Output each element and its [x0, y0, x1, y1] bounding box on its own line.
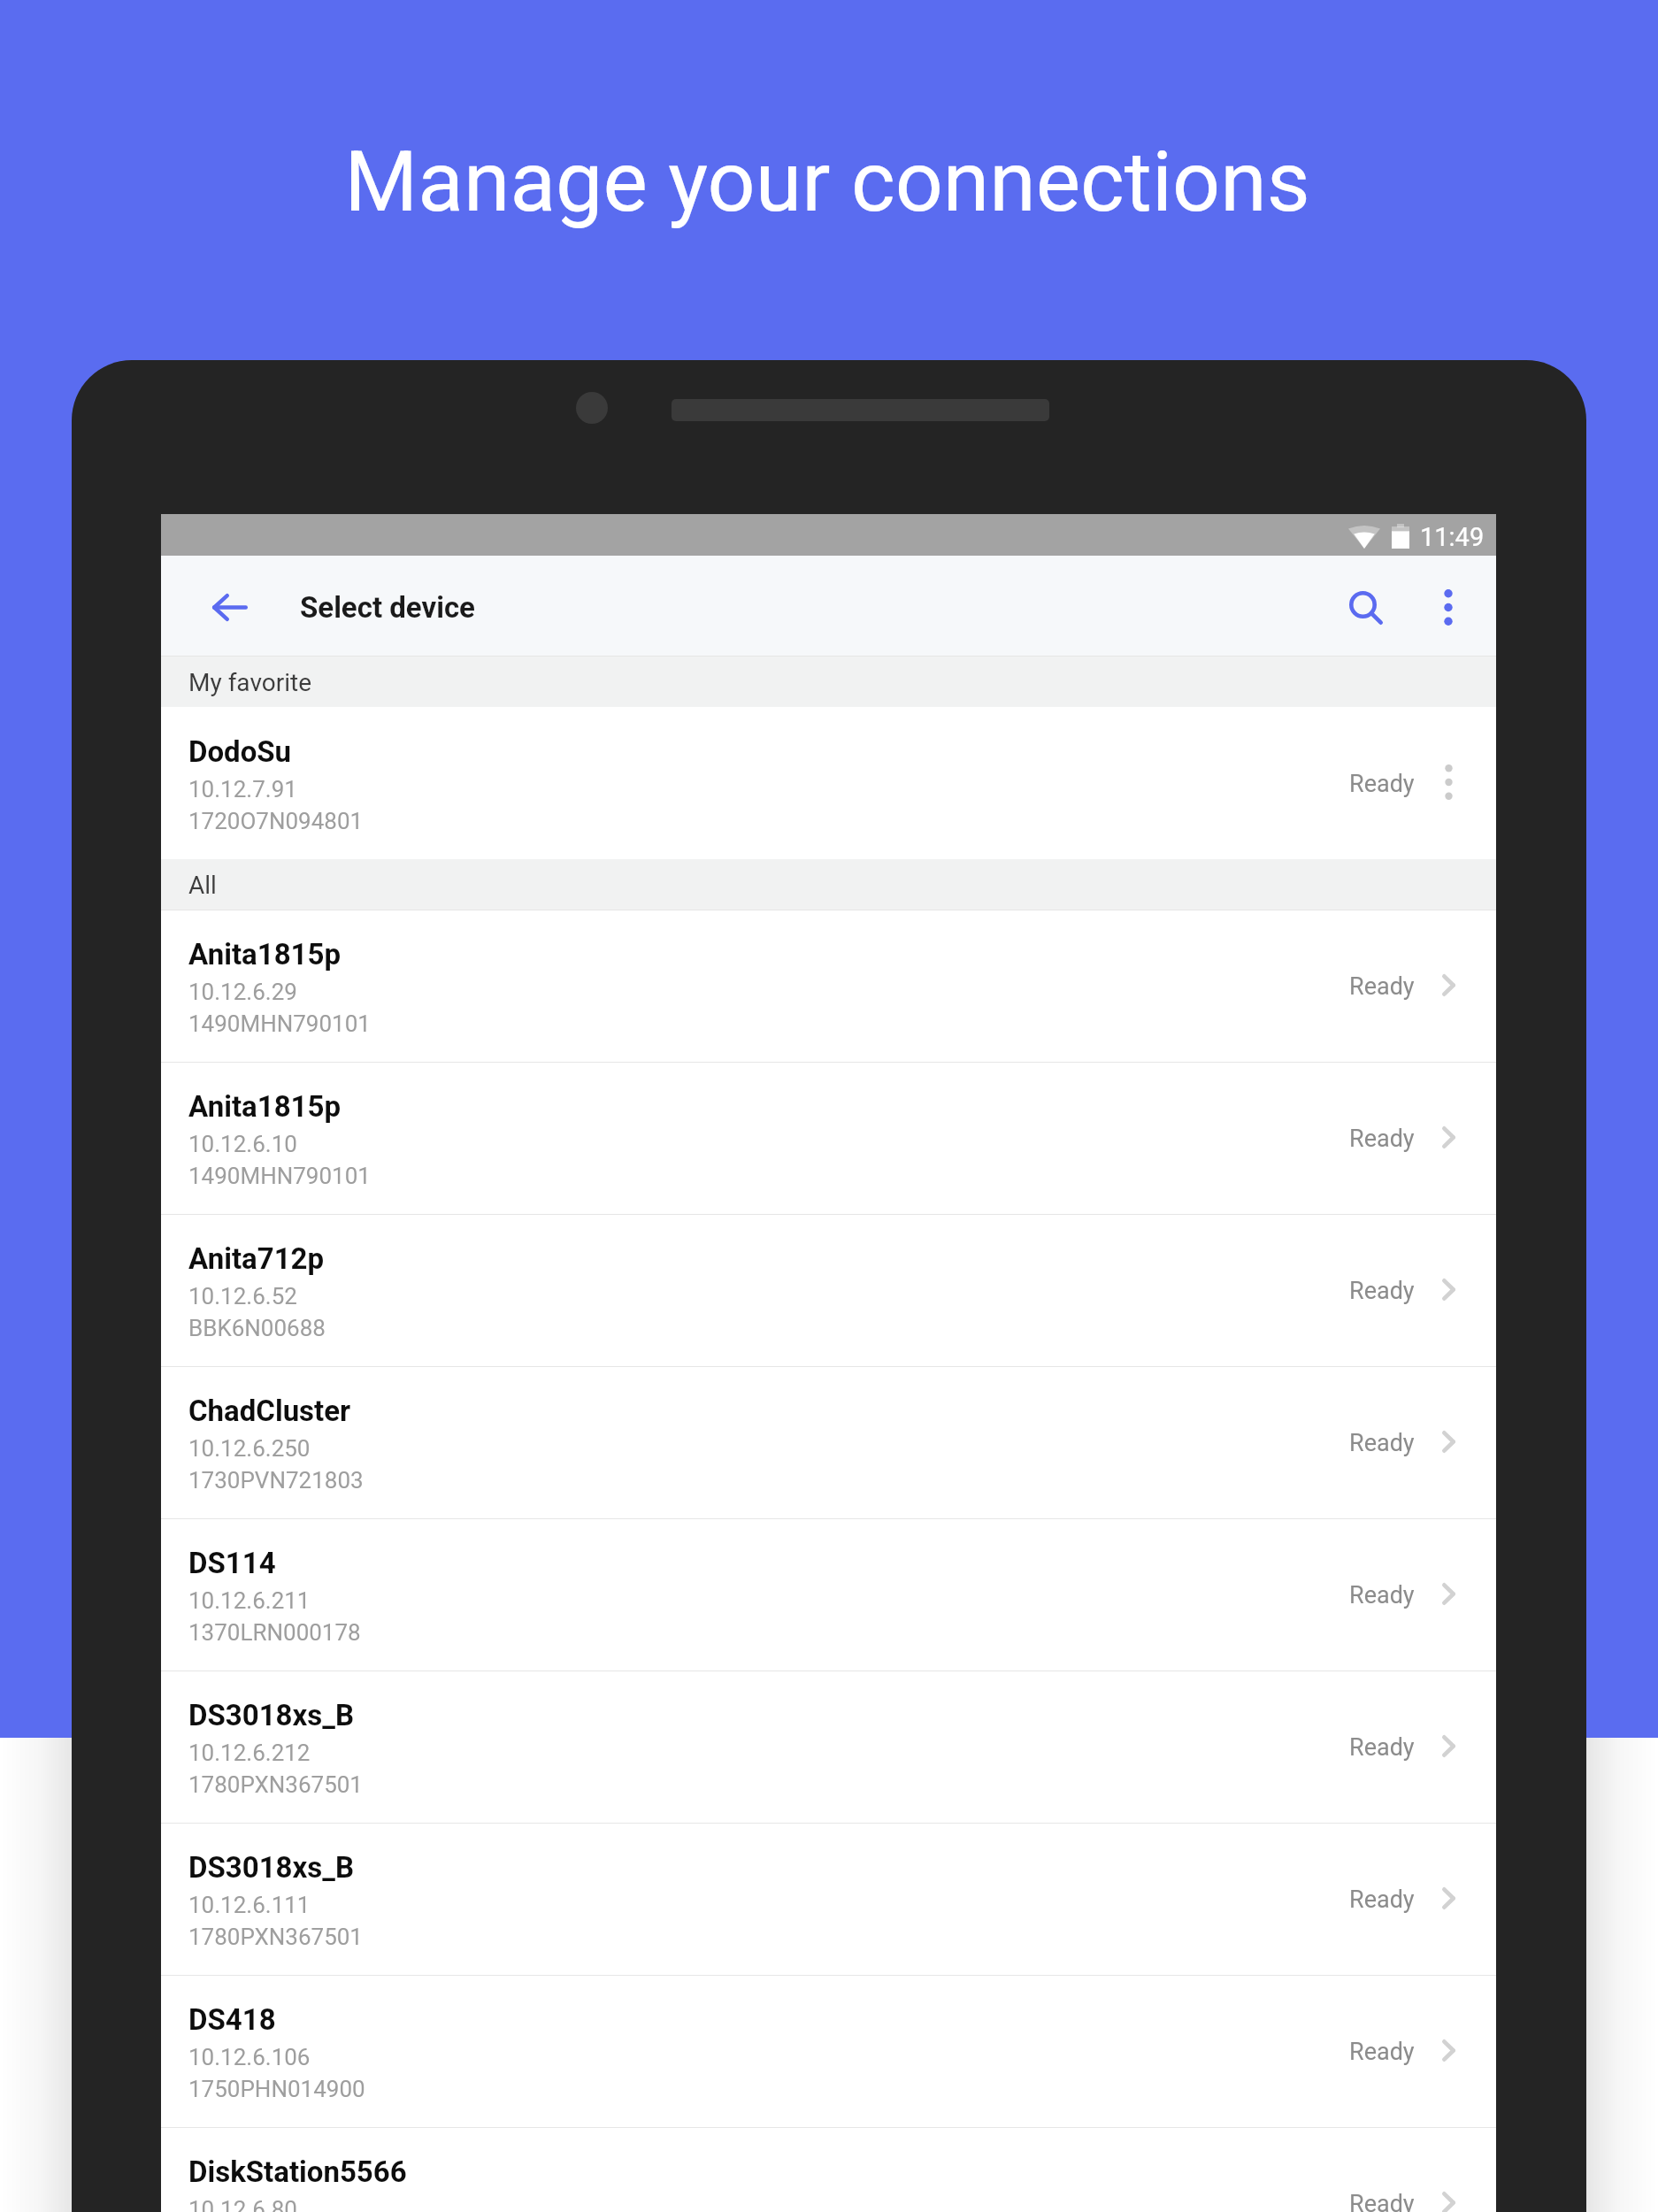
button[interactable]: DS418 — [161, 1975, 1496, 2127]
button[interactable]: DS3018xs_B — [161, 1671, 1496, 1823]
staticText: DodoSu — [188, 734, 292, 769]
button[interactable]: ChadCluster — [161, 1366, 1496, 1518]
button[interactable]: DS114 — [161, 1518, 1496, 1671]
button[interactable]: Anita1815p — [161, 910, 1496, 1062]
staticText: DS114 — [188, 1546, 276, 1580]
staticText: 10.12.6.52 — [188, 1283, 297, 1310]
staticText: Ready — [1349, 1733, 1415, 1762]
staticText: DS418 — [188, 2002, 276, 2037]
other: Open device — [1406, 1094, 1491, 1179]
staticText: 1490MHN790101 — [188, 1010, 371, 1037]
staticText: Manage your connections — [344, 133, 1310, 231]
button[interactable]: Anita1815p — [161, 1062, 1496, 1214]
button[interactable]: Anita712p — [161, 1214, 1496, 1366]
staticText: Ready — [1349, 1581, 1415, 1609]
button[interactable]: DodoSu — [161, 707, 1496, 859]
staticText: Ready — [1349, 2038, 1415, 2066]
staticText: 10.12.6.10 — [188, 1131, 297, 1157]
other: Open device — [1406, 1247, 1491, 1332]
button[interactable]: More options — [1406, 565, 1491, 649]
other: Open device — [1406, 2008, 1491, 2093]
staticText: ChadCluster — [188, 1394, 351, 1428]
other: Open device — [1406, 1703, 1491, 1788]
staticText: 1370LRN000178 — [188, 1619, 361, 1646]
button[interactable]: Device options — [1406, 740, 1491, 825]
staticText: Ready — [1349, 1886, 1415, 1914]
staticText: 10.12.6.111 — [188, 1892, 311, 1918]
staticText: BBK6N00688 — [188, 1315, 326, 1341]
staticText: 10.12.6.29 — [188, 979, 297, 1005]
staticText: 1490MHN790101 — [188, 1163, 371, 1189]
staticText: All — [188, 871, 217, 900]
staticText: 1750PHN014900 — [188, 2076, 365, 2102]
staticText: Ready — [1349, 770, 1415, 798]
staticText: DiskStation5566 — [188, 2154, 407, 2189]
staticText: 11:49 — [1420, 522, 1485, 552]
staticText: 10.12.6.80 — [188, 2196, 297, 2212]
button[interactable]: DS3018xs_B — [161, 1823, 1496, 1975]
other: Open device — [1406, 1551, 1491, 1636]
staticText: Select device — [300, 590, 475, 625]
staticText: 1720O7N094801 — [188, 808, 364, 834]
staticText: 10.12.6.106 — [188, 2044, 311, 2070]
other: Open device — [1406, 942, 1491, 1027]
staticText: Ready — [1349, 1125, 1415, 1153]
staticText: 10.12.7.91 — [188, 776, 297, 803]
other: Open device — [1406, 2160, 1491, 2212]
staticText: Ready — [1349, 972, 1415, 1001]
button[interactable]: DiskStation5566 — [161, 2127, 1496, 2212]
staticText: 1780PXN367501 — [188, 1924, 363, 1950]
staticText: 10.12.6.250 — [188, 1435, 311, 1462]
staticText: Ready — [1349, 1277, 1415, 1305]
staticText: Anita1815p — [188, 1089, 342, 1124]
staticText: Ready — [1349, 2190, 1415, 2212]
button[interactable]: Search — [1324, 565, 1409, 650]
button[interactable]: Back — [188, 565, 272, 649]
staticText: 10.12.6.212 — [188, 1740, 311, 1766]
staticText: 1780PXN367501 — [188, 1771, 363, 1798]
staticText: DS3018xs_B — [188, 1698, 354, 1732]
staticText: 10.12.6.211 — [188, 1587, 311, 1614]
staticText: Anita712p — [188, 1241, 325, 1276]
other: Open device — [1406, 1855, 1491, 1940]
other: Open device — [1406, 1399, 1491, 1484]
staticText: 1730PVN721803 — [188, 1467, 364, 1494]
staticText: Anita1815p — [188, 937, 342, 972]
staticText: My favorite — [188, 668, 312, 697]
staticText: Ready — [1349, 1429, 1415, 1457]
staticText: DS3018xs_B — [188, 1850, 354, 1885]
